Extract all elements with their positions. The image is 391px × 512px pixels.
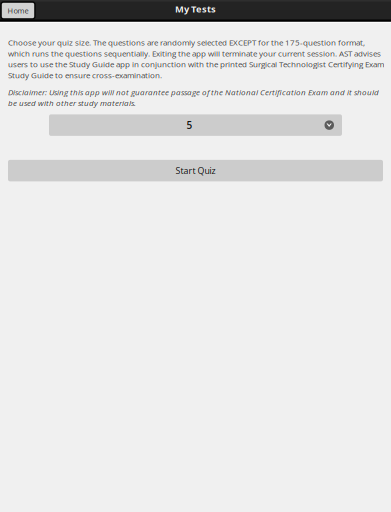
staticText: Choose your quiz size. The questions are… — [8, 37, 384, 81]
staticText: Home — [7, 5, 28, 16]
button[interactable]: Home — [1, 2, 35, 19]
button[interactable]: 5 — [49, 114, 342, 136]
button[interactable]: Start Quiz — [8, 160, 383, 181]
staticText: My Tests — [175, 3, 216, 15]
staticText: 5 — [186, 118, 192, 132]
staticText: Disclaimer: Using this app will not guar… — [8, 87, 379, 108]
staticText: Start Quiz — [175, 165, 215, 177]
